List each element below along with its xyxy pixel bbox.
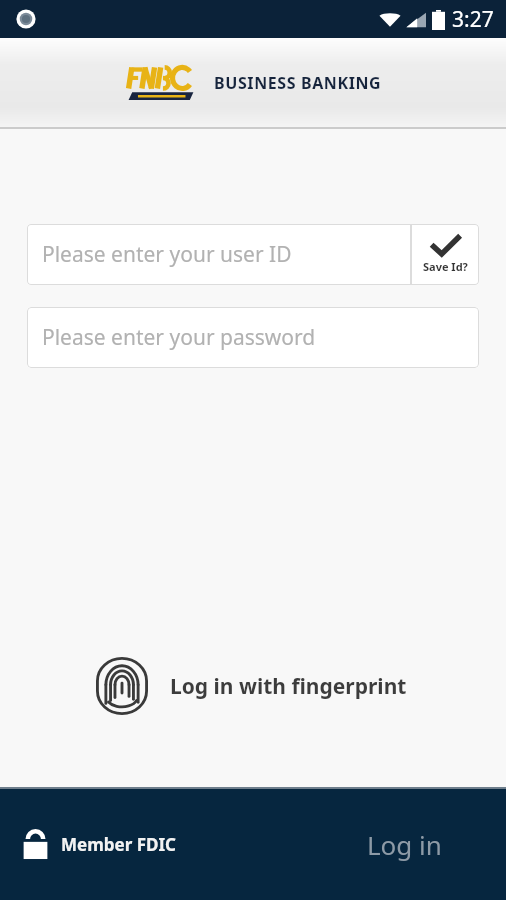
button[interactable]: Save Id xyxy=(411,224,479,285)
button[interactable]: Member FDIC xyxy=(0,822,186,867)
staticText: Member FDIC xyxy=(61,833,176,856)
staticText: 3:27 xyxy=(452,5,494,34)
staticText: Log in xyxy=(367,827,442,862)
staticText: Log in with fingerprint xyxy=(170,672,407,701)
staticText: Save Id? xyxy=(423,259,468,274)
button[interactable]: Please enter your password xyxy=(27,307,479,368)
staticText: Please enter your password xyxy=(42,323,316,352)
staticText: Please enter your user ID xyxy=(42,240,292,269)
button[interactable]: Log in xyxy=(355,819,454,870)
button[interactable]: Log in with fingerprint xyxy=(0,651,506,721)
button[interactable]: Please enter your user ID xyxy=(27,224,411,285)
staticText: BUSINESS BANKING xyxy=(214,72,382,94)
